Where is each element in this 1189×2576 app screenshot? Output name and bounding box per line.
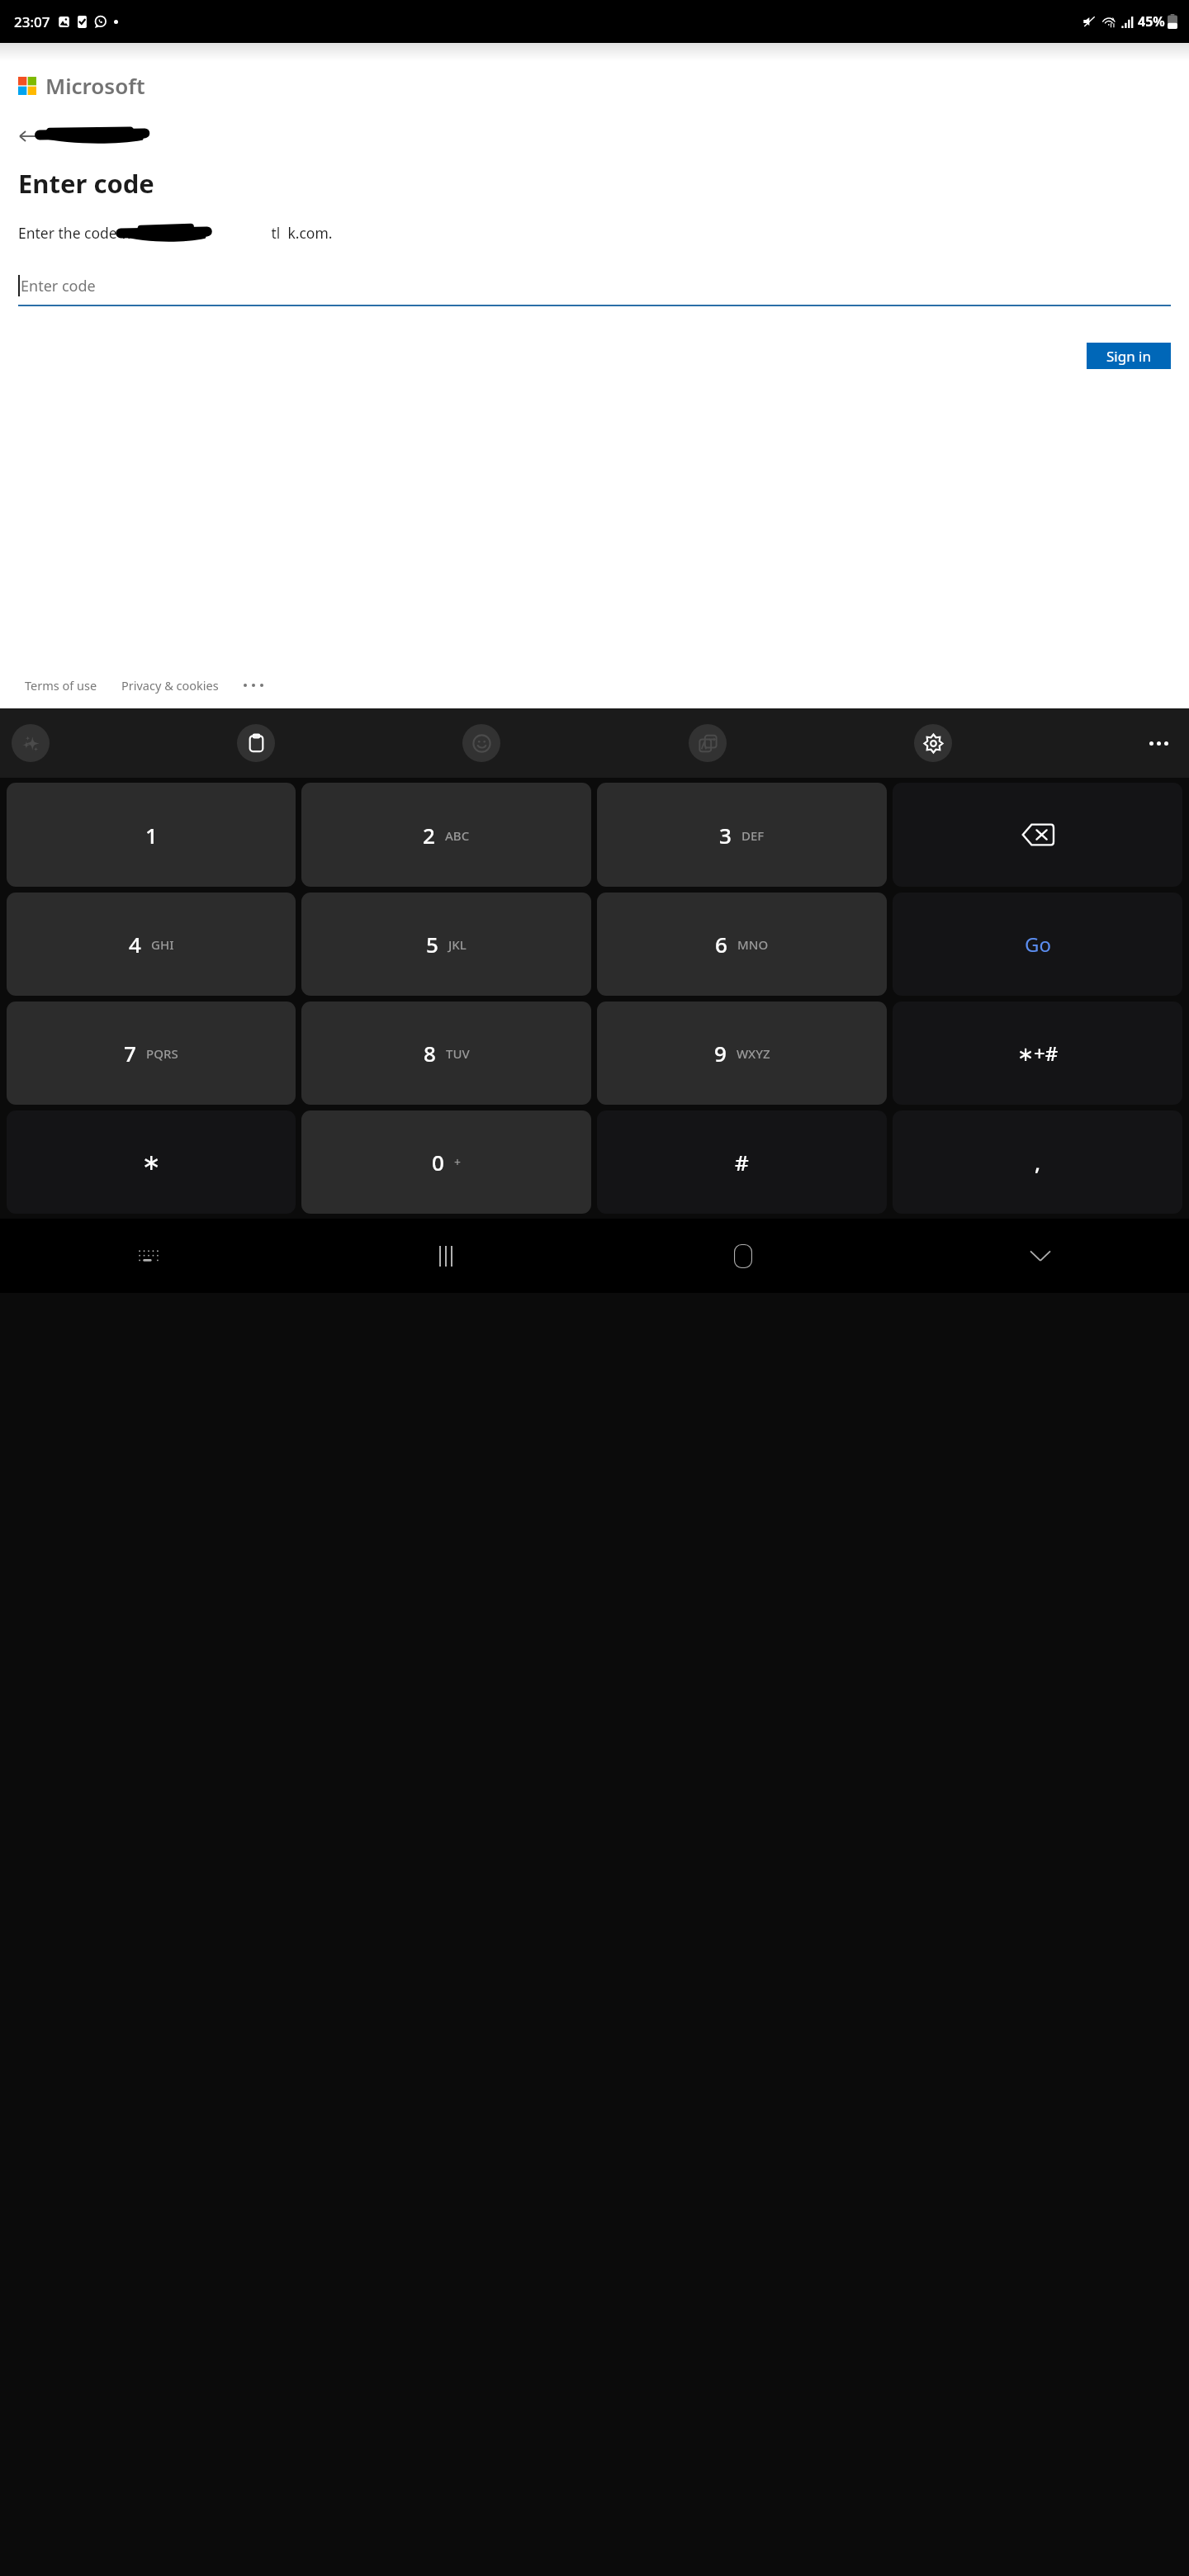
button[interactable]: , xyxy=(893,1110,1182,1214)
staticText: JKL xyxy=(448,936,467,953)
staticText: 7 xyxy=(124,1039,136,1068)
button[interactable]: Home xyxy=(594,1219,892,1293)
staticText: TUV xyxy=(446,1045,470,1062)
button[interactable]: Privacy & cookies xyxy=(121,677,219,694)
button[interactable]: 9 xyxy=(597,1002,887,1105)
staticText: Privacy & cookies xyxy=(121,677,219,694)
button[interactable]: 1 xyxy=(7,783,296,887)
staticText: ABC xyxy=(445,827,470,844)
staticText: GHI xyxy=(151,936,174,953)
staticText: Microsoft xyxy=(45,71,145,100)
staticText: 2 xyxy=(423,821,435,850)
button[interactable]: Recent apps xyxy=(297,1219,594,1293)
staticText: Enter code xyxy=(18,166,154,201)
button[interactable]: ∗ xyxy=(7,1110,296,1214)
button[interactable]: Switch keyboard xyxy=(0,1219,297,1293)
staticText: ∗+# xyxy=(1017,1039,1059,1067)
staticText: Sign in xyxy=(1106,347,1151,366)
button[interactable]: Terms of use xyxy=(25,677,97,694)
button[interactable]: 6 xyxy=(597,893,887,996)
button[interactable]: 4 xyxy=(7,893,296,996)
button[interactable]: 5 xyxy=(301,893,591,996)
staticText: Enter code xyxy=(21,276,96,296)
staticText: , xyxy=(1035,1148,1041,1177)
staticText: ∗ xyxy=(142,1149,161,1175)
other: Back xyxy=(19,128,36,144)
button[interactable]: Settings xyxy=(914,724,952,762)
button[interactable]: AI assist xyxy=(12,724,50,762)
staticText: Terms of use xyxy=(25,677,97,694)
button[interactable]: ∗+# xyxy=(893,1002,1182,1105)
button[interactable]: Translate xyxy=(689,724,727,762)
button[interactable]: 2 xyxy=(301,783,591,887)
staticText: 5 xyxy=(426,930,438,959)
staticText: 0 xyxy=(432,1148,444,1177)
staticText: DEF xyxy=(741,827,765,844)
button[interactable]: Go xyxy=(893,893,1182,996)
button[interactable]: 8 xyxy=(301,1002,591,1105)
button[interactable]: Sign in xyxy=(1087,343,1171,369)
button[interactable]: Back xyxy=(0,120,1189,153)
button[interactable]: Clipboard xyxy=(237,724,275,762)
button[interactable]: Hide keyboard xyxy=(892,1219,1189,1293)
staticText: Go xyxy=(1025,930,1051,958)
button[interactable]: Backspace xyxy=(893,783,1182,887)
button[interactable]: More options xyxy=(1139,724,1177,762)
staticText: 3 xyxy=(719,821,732,850)
staticText: 6 xyxy=(715,930,727,959)
button[interactable]: 7 xyxy=(7,1002,296,1105)
staticText: 45% xyxy=(1138,12,1165,31)
staticText: + xyxy=(454,1154,462,1170)
staticText: 9 xyxy=(714,1039,727,1068)
staticText: MNO xyxy=(737,936,769,953)
button[interactable]: # xyxy=(597,1110,887,1214)
staticText: 4 xyxy=(129,930,141,959)
staticText: WXYZ xyxy=(737,1045,770,1062)
staticText: PQRS xyxy=(146,1045,178,1062)
button[interactable]: Enter code xyxy=(18,267,1171,306)
button[interactable]: Emoji xyxy=(462,724,500,762)
staticText: 8 xyxy=(424,1039,436,1068)
staticText: 1 xyxy=(145,821,158,850)
staticText: 23:07 xyxy=(14,12,50,31)
staticText: # xyxy=(735,1148,749,1177)
button[interactable]: More xyxy=(240,680,267,690)
staticText: Enter the code we sent to d tl k.com. xyxy=(18,223,333,243)
button[interactable]: 3 xyxy=(597,783,887,887)
button[interactable]: 0 xyxy=(301,1110,591,1214)
